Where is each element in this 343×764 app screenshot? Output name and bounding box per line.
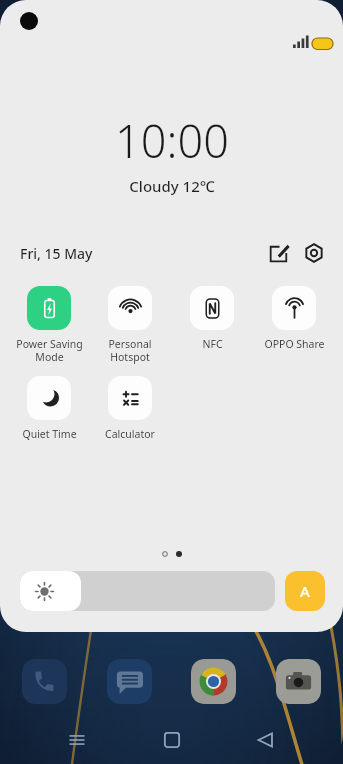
button[interactable]: Camera xyxy=(276,659,321,704)
staticText: Fri, 15 May xyxy=(20,244,93,263)
staticText: OPPO Share xyxy=(264,337,325,351)
button[interactable]: Edit quick settings xyxy=(266,240,292,266)
button[interactable]: Calculator xyxy=(90,376,170,441)
button[interactable]: Home xyxy=(155,723,189,757)
button[interactable]: Messages xyxy=(107,659,152,704)
staticText: NFC xyxy=(202,337,223,351)
button[interactable]: Quiet Time xyxy=(9,376,89,441)
staticText: Cloudy 12℃ xyxy=(129,176,215,196)
staticText: Calculator xyxy=(105,427,155,441)
button[interactable]: OPPO Share xyxy=(254,286,334,351)
button[interactable]: Settings xyxy=(301,240,327,266)
staticText: Power Saving Mode xyxy=(16,337,83,364)
button[interactable]: Power Saving Mode xyxy=(9,286,89,364)
button[interactable]: A xyxy=(285,571,325,611)
staticText: 10:00 xyxy=(115,110,229,171)
button[interactable]: Chrome xyxy=(191,659,236,704)
staticText: A xyxy=(300,581,310,601)
button[interactable]: Back xyxy=(249,723,283,757)
button[interactable]: Phone xyxy=(22,659,67,704)
staticText: Quiet Time xyxy=(22,427,77,441)
button[interactable]: NFC xyxy=(172,286,252,351)
button[interactable]: Brightness xyxy=(20,571,275,611)
staticText: Personal Hotspot xyxy=(108,337,152,364)
button[interactable]: Personal Hotspot xyxy=(90,286,170,364)
button[interactable]: Recent apps xyxy=(60,723,94,757)
